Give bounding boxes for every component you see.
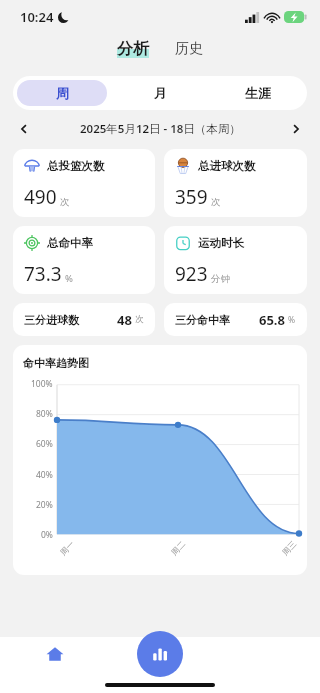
staticText: 分钟	[211, 273, 230, 285]
staticText: 0%	[41, 529, 53, 541]
staticText: 周一	[58, 539, 76, 557]
staticText: 490	[24, 184, 57, 210]
staticText: 次	[60, 196, 70, 208]
other: Accuracy	[24, 235, 40, 251]
button[interactable]: 生涯	[213, 80, 303, 106]
staticText: 总进球次数	[198, 159, 256, 173]
staticText: 48	[117, 311, 132, 329]
staticText: 73.3	[24, 261, 62, 287]
staticText: 60%	[36, 438, 53, 450]
staticText: 历史	[175, 40, 203, 58]
button[interactable]: Statistics	[137, 631, 183, 677]
staticText: 三分进球数	[24, 313, 79, 327]
button[interactable]: Accuracy	[13, 226, 155, 294]
button[interactable]: Next week	[284, 117, 308, 141]
staticText: %	[288, 314, 296, 326]
staticText: 80%	[36, 408, 53, 420]
staticText: 周二	[169, 539, 187, 557]
staticText: 总投篮次数	[47, 159, 105, 173]
staticText: 20%	[36, 499, 53, 511]
button[interactable]: Previous week	[12, 117, 36, 141]
staticText: 分析	[117, 39, 149, 59]
button[interactable]: Home	[40, 639, 70, 669]
staticText: 命中率趋势图	[23, 356, 89, 370]
button[interactable]: 历史	[172, 40, 206, 58]
other: Made shots	[175, 158, 191, 174]
staticText: 生涯	[245, 85, 271, 101]
button[interactable]: 三分进球数	[13, 303, 155, 336]
button[interactable]: Total shots	[13, 149, 155, 217]
staticText: 运动时长	[198, 236, 244, 250]
staticText: 总命中率	[47, 236, 93, 250]
staticText: 40%	[36, 469, 53, 481]
staticText: 周三	[280, 539, 298, 557]
staticText: 10:24	[20, 8, 54, 26]
staticText: 923	[175, 261, 208, 287]
staticText: 周	[56, 85, 69, 101]
other: Total shots	[24, 158, 40, 174]
staticText: 次	[135, 314, 144, 325]
button[interactable]: 月	[115, 80, 205, 106]
staticText: 359	[175, 184, 208, 210]
staticText: 月	[154, 85, 167, 101]
staticText: 2025年5月12日 - 18日（本周）	[80, 121, 241, 137]
button[interactable]: 三分命中率	[164, 303, 307, 336]
button[interactable]: Duration	[164, 226, 307, 294]
button[interactable]: 周	[17, 80, 107, 106]
staticText: %	[65, 272, 73, 285]
staticText: 100%	[31, 378, 53, 390]
other: Duration	[175, 235, 191, 251]
button[interactable]: 分析	[114, 39, 152, 59]
staticText: 次	[211, 196, 221, 208]
staticText: 65.8	[259, 311, 285, 329]
staticText: 三分命中率	[175, 313, 230, 327]
button[interactable]: Made shots	[164, 149, 307, 217]
